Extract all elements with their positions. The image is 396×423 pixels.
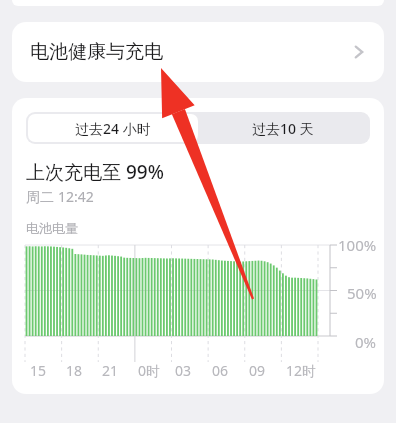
staticText: 上次充电至 99%: [26, 159, 164, 185]
staticText: 电池健康与充电: [30, 40, 163, 64]
staticText: 50%: [347, 283, 377, 303]
staticText: 12:42: [58, 187, 94, 206]
staticText: 周二: [26, 187, 58, 206]
staticText: 12时: [286, 361, 317, 380]
staticText: 09: [249, 361, 266, 380]
staticText: 21: [102, 361, 119, 380]
staticText: 电池电量: [26, 220, 78, 236]
button[interactable]: 过去24 小时: [28, 114, 198, 142]
button[interactable]: 电池健康与充电: [12, 22, 384, 82]
staticText: 03: [175, 361, 192, 380]
staticText: 18: [66, 361, 83, 380]
staticText: 过去10 天: [252, 119, 314, 138]
staticText: 过去24 小时: [75, 119, 151, 138]
staticText: 06: [212, 361, 229, 380]
other: 打开电池健康与充电: [350, 42, 370, 62]
staticText: 0时: [138, 361, 161, 380]
staticText: 100%: [338, 235, 377, 255]
staticText: 15: [30, 361, 47, 380]
staticText: 0%: [355, 332, 377, 352]
button[interactable]: 过去10 天: [198, 114, 368, 142]
